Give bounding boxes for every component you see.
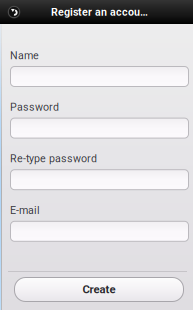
staticText: Create: [82, 283, 115, 296]
staticText: Re-type password: [10, 152, 97, 165]
button[interactable]: Create: [14, 277, 184, 302]
staticText: Name: [10, 49, 39, 62]
staticText: Register an accou…: [51, 6, 148, 18]
button[interactable]: Back: [0, 0, 28, 24]
button[interactable]: [10, 169, 189, 190]
staticText: Password: [10, 101, 59, 113]
button[interactable]: [10, 118, 189, 139]
button[interactable]: [10, 221, 189, 242]
button[interactable]: [10, 66, 189, 87]
staticText: E-mail: [10, 204, 40, 216]
